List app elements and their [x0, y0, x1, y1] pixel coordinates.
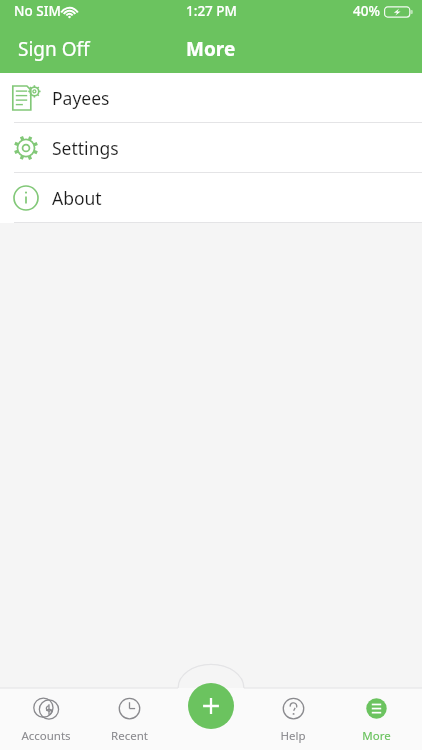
staticText: Help	[280, 728, 306, 744]
staticText: Payees	[52, 86, 110, 110]
button[interactable]: Recent	[92, 688, 166, 750]
button[interactable]: Payees	[0, 73, 422, 122]
staticText: More	[362, 728, 391, 744]
staticText: No SIM	[14, 2, 61, 20]
staticText: Recent	[111, 728, 148, 744]
staticText: More	[186, 36, 236, 62]
button[interactable]: Help	[256, 688, 330, 750]
staticText: Settings	[52, 136, 119, 160]
staticText: 40%	[353, 2, 380, 20]
staticText: Accounts	[21, 728, 71, 744]
button[interactable]: Sign Off	[0, 30, 100, 68]
staticText: Sign Off	[18, 36, 90, 62]
button[interactable]: More	[339, 688, 413, 750]
button[interactable]: Settings	[0, 123, 422, 172]
button[interactable]: Add	[188, 683, 234, 729]
button[interactable]: About	[0, 173, 422, 222]
button[interactable]: Accounts	[9, 688, 83, 750]
staticText: About	[52, 186, 102, 210]
staticText: 1:27 PM	[186, 2, 237, 20]
